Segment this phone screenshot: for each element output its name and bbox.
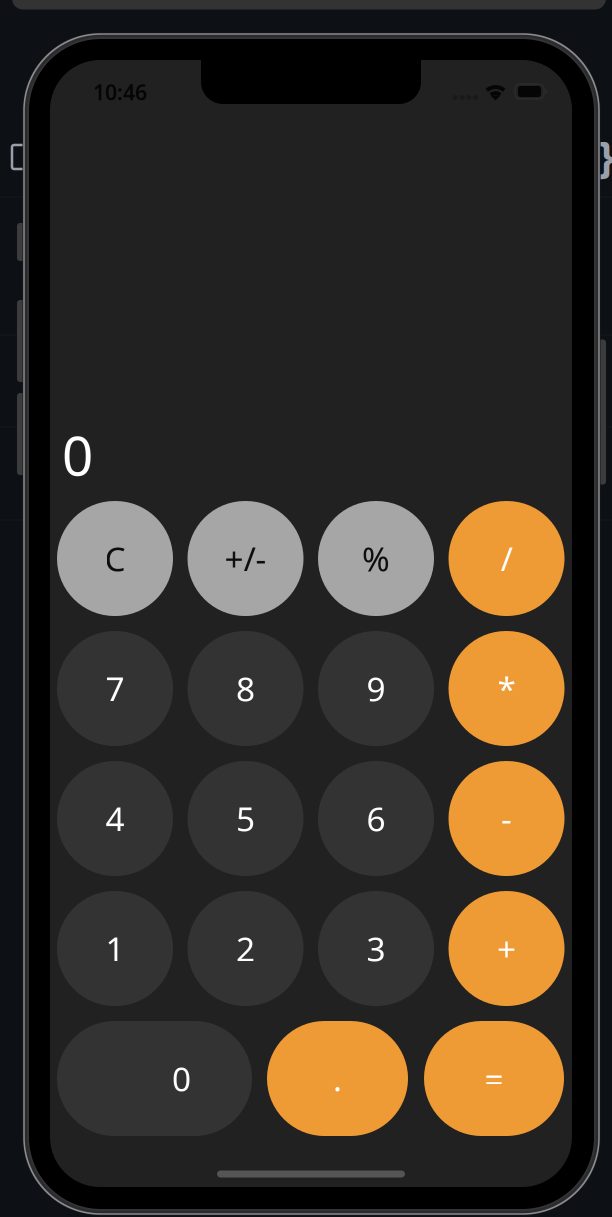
staticText: / <box>500 536 512 581</box>
button[interactable]: 9 <box>318 631 434 746</box>
staticText: +/- <box>224 536 266 581</box>
staticText: 3 <box>366 926 385 971</box>
button[interactable]: +/- <box>187 501 303 616</box>
button[interactable]: / <box>448 501 564 616</box>
staticText: . <box>333 1056 342 1101</box>
button[interactable]: 7 <box>57 631 173 746</box>
staticText: 10:46 <box>93 78 147 106</box>
staticText: 8 <box>236 666 255 711</box>
button[interactable]: * <box>448 631 564 746</box>
staticText: 2 <box>236 926 255 971</box>
staticText: * <box>497 666 515 711</box>
staticText: = <box>484 1056 503 1101</box>
button[interactable]: 3 <box>318 891 434 1006</box>
button[interactable]: 0 <box>57 1021 252 1136</box>
button[interactable]: - <box>448 761 564 876</box>
staticText: 0 <box>172 1056 191 1101</box>
staticText: 0 <box>62 418 93 491</box>
button[interactable]: 5 <box>187 761 303 876</box>
staticText: + <box>497 926 516 971</box>
staticText: 9 <box>366 666 385 711</box>
staticText: % <box>362 536 390 581</box>
staticText: } <box>598 128 612 184</box>
button[interactable]: 1 <box>57 891 173 1006</box>
button[interactable]: 4 <box>57 761 173 876</box>
button[interactable]: = <box>424 1021 564 1136</box>
button[interactable]: 8 <box>187 631 303 746</box>
staticText: 4 <box>105 796 124 841</box>
button[interactable]: . <box>267 1021 408 1136</box>
button[interactable]: 2 <box>187 891 303 1006</box>
staticText: 1 <box>105 926 124 971</box>
staticText: 6 <box>366 796 385 841</box>
button[interactable]: + <box>448 891 564 1006</box>
button[interactable]: C <box>57 501 173 616</box>
staticText: C <box>104 536 125 581</box>
button[interactable]: % <box>318 501 434 616</box>
staticText: - <box>501 796 512 841</box>
button[interactable]: 6 <box>318 761 434 876</box>
staticText: 7 <box>105 666 124 711</box>
staticText: 5 <box>236 796 255 841</box>
